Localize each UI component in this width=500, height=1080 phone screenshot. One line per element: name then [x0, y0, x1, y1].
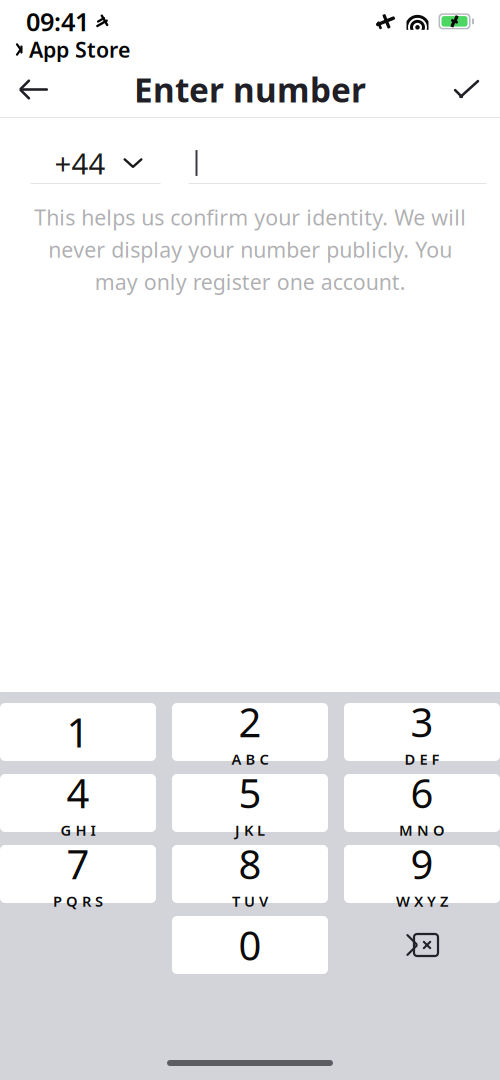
staticText: 1 — [66, 705, 89, 758]
staticText: P Q R S — [53, 891, 103, 911]
button[interactable]: Back — [6, 61, 62, 117]
button[interactable]: 9 — [344, 845, 500, 903]
staticText: 3 — [410, 695, 433, 748]
staticText: 2 — [238, 695, 261, 748]
staticText: 8 — [238, 837, 261, 890]
button[interactable]: Confirm — [438, 61, 494, 117]
staticText: Enter number — [134, 67, 366, 112]
staticText: M N O — [399, 820, 445, 840]
button[interactable]: Country code +44 — [30, 143, 160, 184]
button[interactable]: 8 — [172, 845, 328, 903]
staticText: 0 — [238, 918, 261, 971]
staticText: +44 — [54, 143, 105, 182]
staticText: App Store — [29, 35, 130, 64]
staticText: D E F — [404, 749, 439, 769]
staticText: 9 — [410, 837, 433, 890]
staticText: 7 — [66, 837, 89, 890]
button[interactable]: 4 — [0, 774, 156, 832]
staticText: 6 — [410, 766, 433, 819]
staticText: J K L — [235, 820, 265, 840]
staticText: G H I — [60, 820, 95, 840]
button[interactable]: 0 — [172, 916, 328, 974]
button[interactable]: 2 — [172, 703, 328, 761]
staticText: 09:41 — [26, 4, 89, 38]
button[interactable]: 6 — [344, 774, 500, 832]
button[interactable]: Delete — [344, 916, 500, 974]
button[interactable]: 7 — [0, 845, 156, 903]
staticText: A B C — [231, 749, 268, 769]
button[interactable]: 3 — [344, 703, 500, 761]
staticText: 4 — [66, 766, 89, 819]
staticText: This helps us confirm your identity. We … — [34, 203, 466, 296]
staticText: 5 — [238, 766, 261, 819]
button[interactable]: 5 — [172, 774, 328, 832]
staticText: W X Y Z — [396, 891, 448, 911]
button[interactable]: 1 — [0, 703, 156, 761]
staticText: T U V — [232, 891, 268, 911]
